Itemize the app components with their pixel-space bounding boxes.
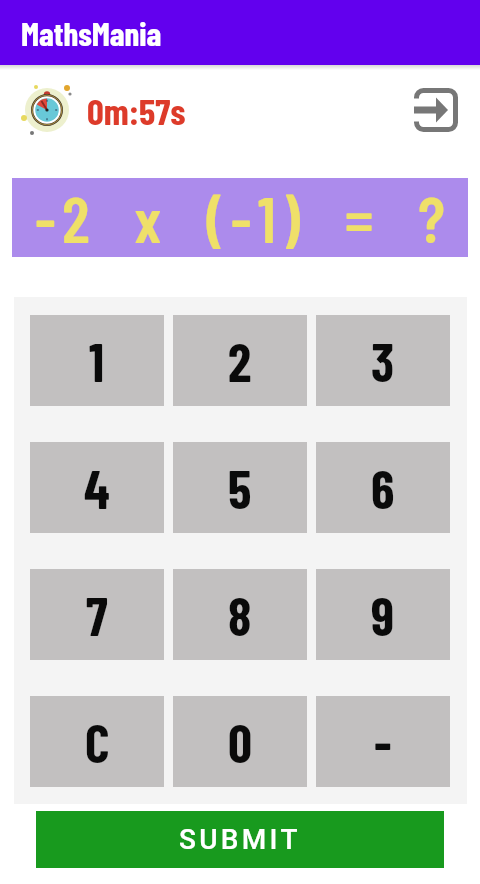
button[interactable]: 6 — [316, 442, 450, 533]
button[interactable]: 0 — [173, 696, 307, 787]
staticText: 0 — [228, 710, 253, 774]
staticText: - — [374, 710, 392, 774]
staticText: 2 — [228, 329, 252, 393]
button[interactable]: 3 — [316, 315, 450, 406]
button[interactable]: SUBMIT — [36, 811, 444, 868]
staticText: MathsMania — [21, 13, 162, 53]
button[interactable] — [414, 88, 458, 132]
button[interactable]: 7 — [30, 569, 164, 660]
staticText: 1 — [89, 329, 105, 393]
staticText: 9 — [371, 583, 395, 647]
staticText: 0m:57s — [87, 88, 186, 132]
staticText: C — [85, 710, 110, 774]
button[interactable]: 8 — [173, 569, 307, 660]
staticText: 4 — [84, 456, 110, 520]
button[interactable]: 4 — [30, 442, 164, 533]
staticText: 8 — [228, 583, 252, 647]
staticText: 7 — [86, 583, 108, 647]
button[interactable]: 5 — [173, 442, 307, 533]
button[interactable]: 1 — [30, 315, 164, 406]
staticText: -2 x (-1) = ? — [35, 179, 452, 256]
button[interactable]: 9 — [316, 569, 450, 660]
staticText: 3 — [371, 329, 395, 393]
button[interactable]: - — [316, 696, 450, 787]
staticText: SUBMIT — [179, 823, 301, 856]
staticText: 6 — [371, 456, 395, 520]
staticText: 5 — [228, 456, 252, 520]
button[interactable]: 2 — [173, 315, 307, 406]
button[interactable]: C — [30, 696, 164, 787]
